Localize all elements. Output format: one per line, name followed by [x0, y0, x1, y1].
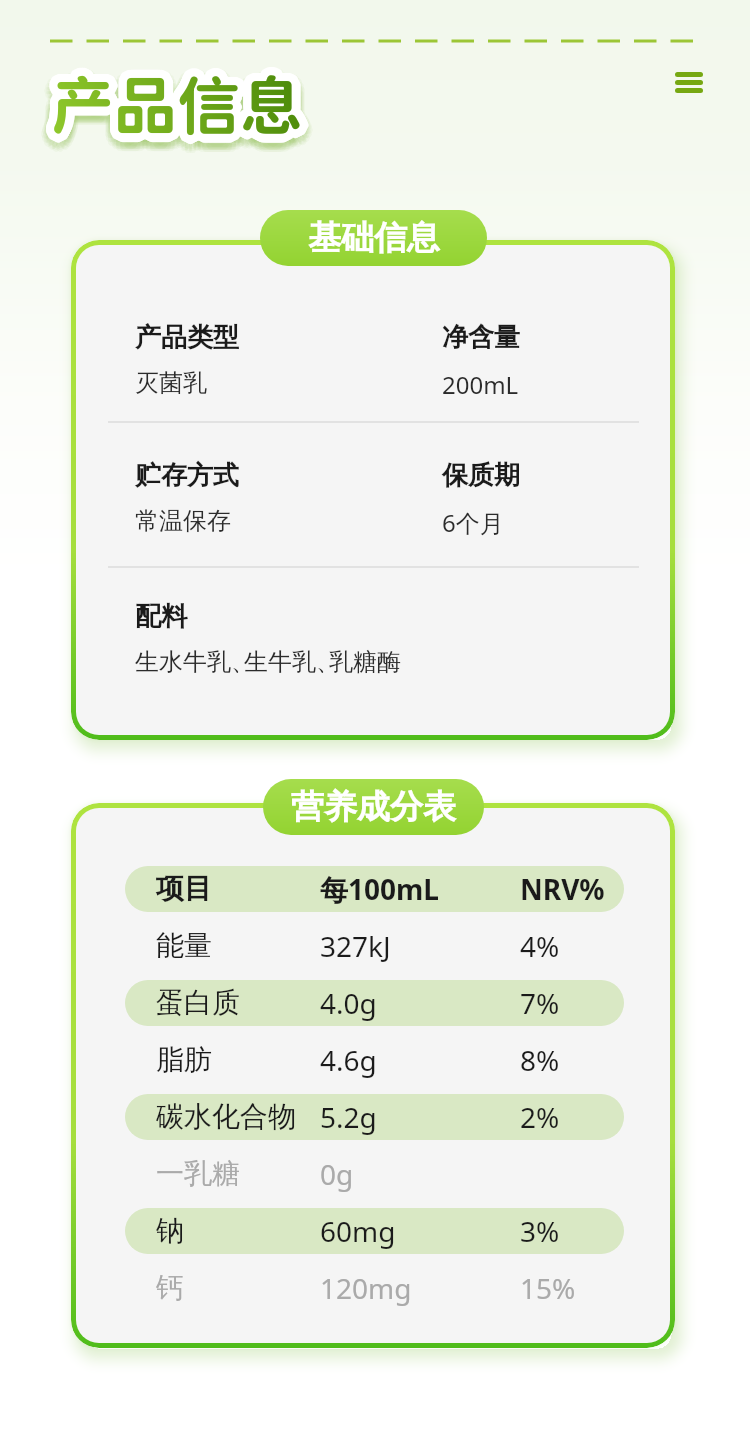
- staticText: 产品信息: [38, 73, 290, 147]
- button[interactable]: Menu: [664, 62, 714, 106]
- staticText: 产品信息: [43, 66, 295, 140]
- staticText: 产品信息: [57, 72, 309, 146]
- staticText: 产品信息: [43, 80, 295, 154]
- staticText: 产品信息: [54, 70, 306, 144]
- staticText: 产品信息: [56, 73, 308, 147]
- staticText: 60mg: [320, 1212, 396, 1250]
- staticText: 产品信息: [43, 76, 295, 150]
- staticText: 产品信息: [47, 69, 299, 143]
- staticText: 产品信息: [53, 65, 305, 139]
- staticText: 8%: [520, 1041, 560, 1079]
- staticText: 200mL: [442, 368, 519, 401]
- staticText: 产品信息: [52, 72, 304, 146]
- staticText: 产品信息: [52, 73, 304, 147]
- staticText: 产品信息: [56, 81, 308, 155]
- staticText: 产品信息: [52, 70, 304, 144]
- staticText: 产品信息: [59, 70, 311, 144]
- staticText: 产品信息: [44, 68, 296, 142]
- staticText: 脂肪: [156, 1042, 212, 1077]
- staticText: 产品信息: [55, 68, 307, 142]
- staticText: 产品信息: [55, 67, 307, 141]
- staticText: 产品信息: [47, 65, 299, 139]
- button[interactable]: 一乳糖: [76, 1145, 670, 1202]
- staticText: 产品信息: [56, 63, 308, 137]
- staticText: 产品信息: [49, 65, 301, 139]
- staticText: 产品信息: [42, 73, 294, 147]
- staticText: 产品信息: [49, 75, 301, 149]
- staticText: 产品信息: [59, 70, 311, 144]
- staticText: 产品信息: [50, 70, 302, 144]
- button[interactable]: 能量: [76, 917, 670, 974]
- staticText: 钠: [156, 1213, 184, 1248]
- staticText: 产品信息: [50, 70, 302, 144]
- staticText: 产品信息: [56, 65, 308, 139]
- staticText: 灭菌乳: [135, 368, 207, 398]
- button[interactable]: 基础信息: [260, 210, 487, 266]
- staticText: 产品信息: [55, 74, 307, 148]
- staticText: 产品信息: [44, 66, 296, 140]
- button[interactable]: 钠: [76, 1202, 670, 1259]
- staticText: 产品信息: [50, 72, 302, 146]
- staticText: 产品信息: [49, 67, 301, 141]
- staticText: 产品信息: [51, 72, 303, 146]
- staticText: 产品信息: [60, 68, 312, 142]
- staticText: 产品信息: [49, 68, 301, 142]
- staticText: 产品信息: [46, 67, 298, 141]
- staticText: 产品信息: [53, 66, 305, 140]
- staticText: 产品信息: [50, 63, 302, 137]
- staticText: 产品信息: [39, 77, 291, 151]
- staticText: 产品信息: [56, 67, 308, 141]
- staticText: 产品信息: [57, 68, 309, 142]
- staticText: 产品信息: [44, 70, 296, 144]
- staticText: 产品信息: [51, 75, 303, 149]
- staticText: 产品信息: [53, 64, 305, 138]
- staticText: 产品信息: [54, 73, 306, 147]
- button[interactable]: 营养成分表: [263, 779, 484, 835]
- staticText: 产品信息: [46, 71, 298, 145]
- staticText: 产品信息: [48, 70, 300, 144]
- staticText: 产品信息: [61, 69, 313, 143]
- staticText: 产品信息: [41, 65, 293, 139]
- staticText: 产品信息: [53, 69, 305, 143]
- staticText: 产品信息: [52, 63, 304, 137]
- button[interactable]: 项目: [76, 860, 670, 917]
- staticText: 产品信息: [55, 64, 307, 138]
- staticText: 蛋白质: [156, 985, 240, 1020]
- staticText: 产品信息: [53, 84, 305, 158]
- staticText: 产品信息: [53, 61, 305, 135]
- staticText: 产品信息: [56, 69, 308, 143]
- staticText: 产品信息: [45, 84, 297, 158]
- button[interactable]: 脂肪: [76, 1031, 670, 1088]
- staticText: 产品信息: [48, 71, 300, 145]
- button[interactable]: 碳水化合物: [76, 1088, 670, 1145]
- staticText: 产品信息: [47, 64, 299, 138]
- staticText: 产品信息: [41, 77, 293, 151]
- button[interactable]: 蛋白质: [76, 974, 670, 1031]
- staticText: 产品信息: [61, 65, 313, 139]
- staticText: 产品信息: [43, 70, 295, 144]
- staticText: 一乳糖: [156, 1156, 240, 1191]
- staticText: 产品信息: [51, 60, 303, 134]
- staticText: 产品信息: [41, 81, 293, 155]
- staticText: 产品信息: [49, 69, 301, 143]
- staticText: 产品信息: [50, 64, 302, 138]
- staticText: 15%: [520, 1269, 576, 1307]
- staticText: 能量: [156, 928, 212, 963]
- staticText: 产品信息: [62, 73, 314, 147]
- staticText: 产品信息: [51, 64, 303, 138]
- staticText: 产品信息: [46, 63, 298, 137]
- staticText: 产品信息: [47, 67, 299, 141]
- staticText: 产品信息: [45, 65, 297, 139]
- staticText: 产品信息: [51, 68, 303, 142]
- staticText: 产品信息: [58, 79, 310, 153]
- staticText: 产品信息: [53, 67, 305, 141]
- staticText: 产品信息: [51, 74, 303, 148]
- staticText: 产品信息: [48, 63, 300, 137]
- staticText: 产品信息: [47, 68, 299, 142]
- staticText: 7%: [520, 984, 560, 1022]
- staticText: 产品信息: [47, 81, 299, 155]
- staticText: 产品信息: [45, 62, 297, 136]
- staticText: 钙: [156, 1270, 184, 1305]
- button[interactable]: 钙: [76, 1259, 670, 1316]
- staticText: 产品信息: [43, 66, 295, 140]
